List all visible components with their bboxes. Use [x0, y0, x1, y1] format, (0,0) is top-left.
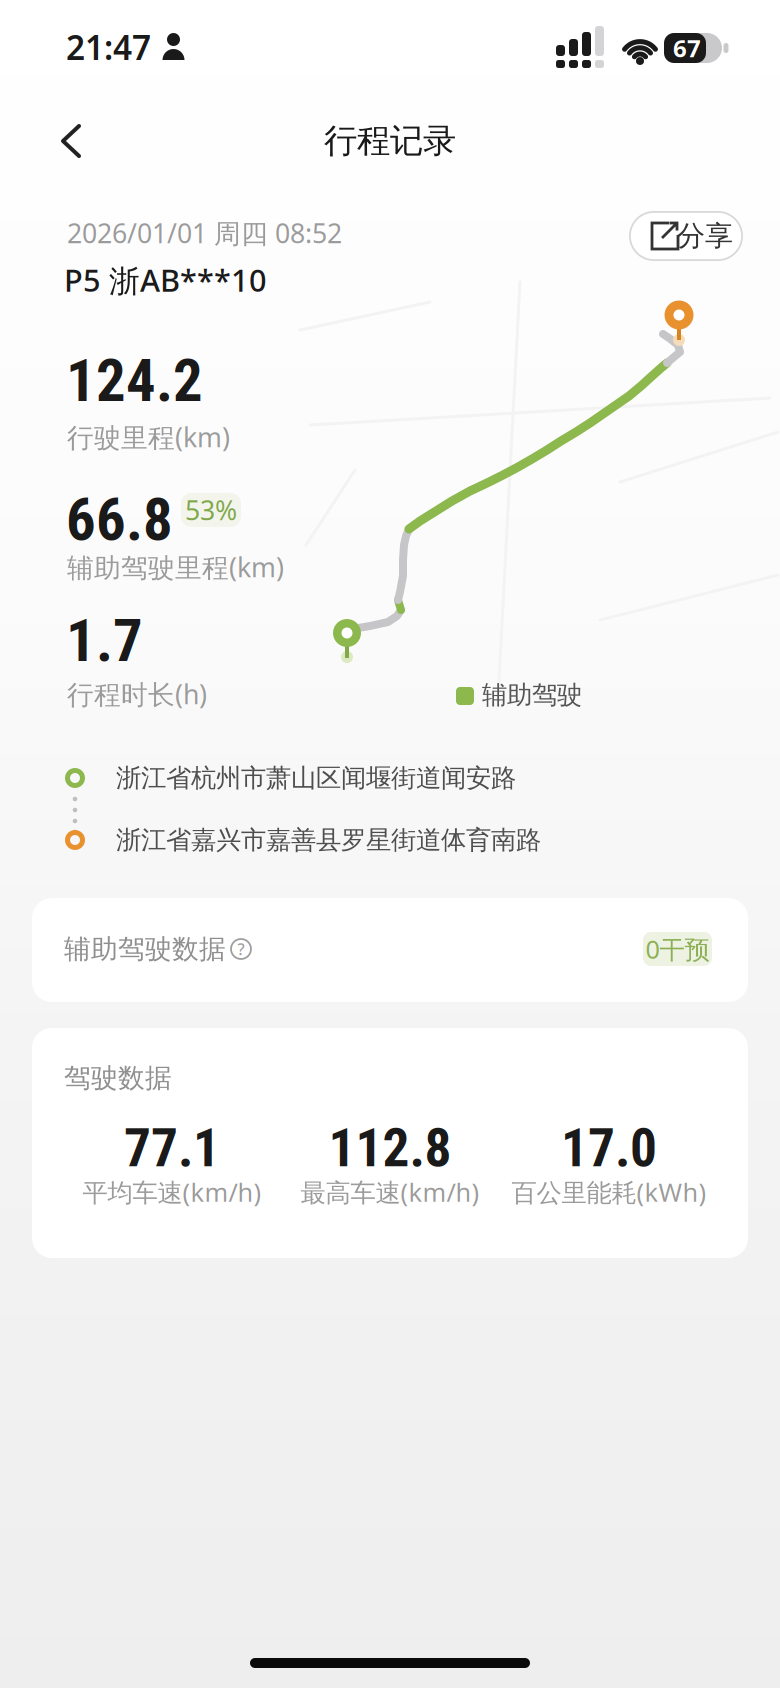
staticText: 行程记录 [324, 120, 456, 161]
button[interactable]: 分享 [629, 211, 743, 261]
button[interactable]: 返回 [41, 111, 101, 171]
staticText: 77.1 [124, 1117, 220, 1179]
staticText: 行驶里程(km) [67, 419, 230, 455]
staticText: 最高车速(km/h) [300, 1175, 479, 1209]
staticText: 辅助驾驶 [482, 679, 582, 710]
staticText: 百公里能耗(kWh) [511, 1175, 706, 1209]
staticText: 112.8 [328, 1117, 451, 1179]
staticText: 21:47 [66, 25, 151, 69]
staticText: 分享 [677, 219, 733, 253]
staticText: 124.2 [66, 347, 203, 415]
staticText: 驾驶数据 [64, 1062, 172, 1094]
staticText: 0干预 [645, 932, 709, 966]
staticText: 浙江省杭州市萧山区闻堰街道闻安路 [116, 762, 516, 793]
staticText: 53% [185, 492, 237, 528]
staticText: P5 浙AB***10 [64, 260, 267, 300]
staticText: 67 [673, 32, 701, 64]
staticText: 平均车速(km/h) [82, 1175, 261, 1209]
staticText: 2026/01/01 周四 08:52 [67, 215, 342, 251]
button[interactable]: 辅助驾驶数据说明 [223, 931, 259, 967]
staticText: ? [237, 938, 244, 960]
staticText: 浙江省嘉兴市嘉善县罗星街道体育南路 [116, 824, 541, 855]
staticText: 行程时长(h) [67, 676, 207, 712]
staticText: 辅助驾驶数据 [64, 933, 226, 965]
staticText: 辅助驾驶里程(km) [67, 549, 284, 585]
staticText: 17.0 [561, 1117, 657, 1179]
staticText: 1.7 [66, 607, 143, 675]
staticText: 66.8 [66, 486, 173, 554]
